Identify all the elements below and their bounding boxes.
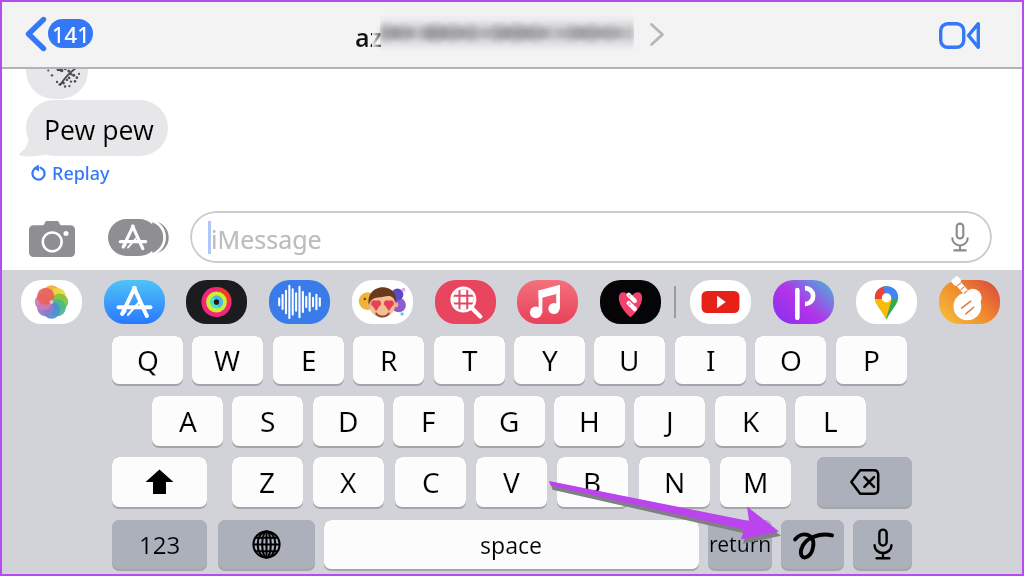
button[interactable]: W: [192, 336, 263, 384]
staticText: W: [214, 341, 241, 379]
button[interactable]: Scribble handwriting: [781, 520, 844, 569]
button[interactable]: YouTube: [690, 280, 751, 324]
staticText: 123: [139, 528, 181, 561]
button[interactable]: U: [594, 336, 665, 384]
staticText: iMessage: [211, 222, 322, 256]
staticText: N: [664, 463, 686, 501]
staticText: Q: [137, 341, 159, 379]
button[interactable]: K: [715, 396, 786, 446]
button[interactable]: Photos: [21, 280, 82, 324]
staticText: S: [260, 402, 276, 440]
button[interactable]: Audio message: [269, 280, 330, 324]
button[interactable]: A: [152, 396, 223, 446]
button[interactable]: 123: [112, 520, 207, 569]
button[interactable]: Health: [600, 280, 661, 324]
button[interactable]: T: [434, 336, 505, 384]
staticText: B: [583, 463, 602, 501]
staticText: R: [380, 341, 398, 379]
button[interactable]: V: [476, 457, 547, 507]
button[interactable]: Conversation details: [352, 10, 672, 58]
button[interactable]: iMessage text field: [190, 211, 992, 263]
button[interactable]: E: [273, 336, 344, 384]
button[interactable]: Dictation: [853, 520, 912, 569]
staticText: X: [340, 463, 357, 501]
staticText: Replay: [52, 161, 110, 186]
button[interactable]: GarageBand: [939, 280, 1000, 324]
button[interactable]: B: [557, 457, 628, 507]
button[interactable]: iMessage apps: [100, 212, 164, 264]
staticText: K: [742, 402, 760, 440]
button[interactable]: H: [554, 396, 625, 446]
staticText: F: [421, 402, 436, 440]
staticText: P: [863, 341, 880, 379]
button[interactable]: N: [639, 457, 710, 507]
staticText: Pew pew: [44, 112, 154, 148]
button[interactable]: Memoji: [352, 280, 413, 324]
button[interactable]: Change keyboard: [218, 520, 315, 569]
staticText: az: [355, 20, 382, 54]
staticText: M: [743, 463, 769, 501]
button[interactable]: M: [720, 457, 791, 507]
button[interactable]: J: [634, 396, 705, 446]
button[interactable]: space: [324, 520, 699, 569]
button[interactable]: App Store: [104, 280, 165, 324]
staticText: C: [422, 463, 440, 501]
staticText: D: [338, 402, 359, 440]
staticText: L: [823, 402, 838, 440]
staticText: A: [179, 402, 197, 440]
button[interactable]: Back, 141 unread messages: [18, 8, 100, 60]
staticText: J: [666, 402, 674, 440]
button[interactable]: Backspace: [817, 457, 912, 507]
button[interactable]: Picsart: [773, 280, 834, 324]
button[interactable]: Camera: [20, 213, 84, 265]
staticText: T: [462, 341, 478, 379]
button[interactable]: return: [708, 520, 772, 569]
staticText: return: [709, 530, 772, 559]
button[interactable]: Fitness: [186, 280, 247, 324]
staticText: Y: [542, 341, 558, 379]
button[interactable]: F: [393, 396, 464, 446]
button[interactable]: Dictate: [939, 216, 981, 258]
button[interactable]: X: [313, 457, 384, 507]
button[interactable]: Image search: [435, 280, 496, 324]
button[interactable]: Music: [517, 280, 578, 324]
button[interactable]: Y: [514, 336, 585, 384]
button[interactable]: P: [836, 336, 907, 384]
staticText: H: [579, 402, 600, 440]
button[interactable]: FaceTime video call: [930, 10, 988, 60]
button[interactable]: S: [232, 396, 303, 446]
button[interactable]: R: [353, 336, 424, 384]
button[interactable]: I: [675, 336, 746, 384]
staticText: G: [499, 402, 520, 440]
button[interactable]: Replay: [30, 160, 110, 186]
button[interactable]: Z: [232, 457, 303, 507]
button[interactable]: Google Maps: [856, 280, 917, 324]
button[interactable]: Shift: [112, 457, 207, 507]
button[interactable]: L: [795, 396, 866, 446]
button[interactable]: C: [395, 457, 466, 507]
staticText: U: [619, 341, 640, 379]
staticText: E: [301, 341, 317, 379]
staticText: Z: [259, 463, 276, 501]
staticText: space: [480, 529, 543, 560]
button[interactable]: O: [755, 336, 826, 384]
staticText: I: [706, 341, 716, 379]
staticText: V: [503, 463, 520, 501]
staticText: O: [780, 341, 802, 379]
button[interactable]: D: [313, 396, 384, 446]
staticText: 141: [52, 19, 90, 48]
button[interactable]: Q: [112, 336, 183, 384]
button[interactable]: G: [474, 396, 545, 446]
